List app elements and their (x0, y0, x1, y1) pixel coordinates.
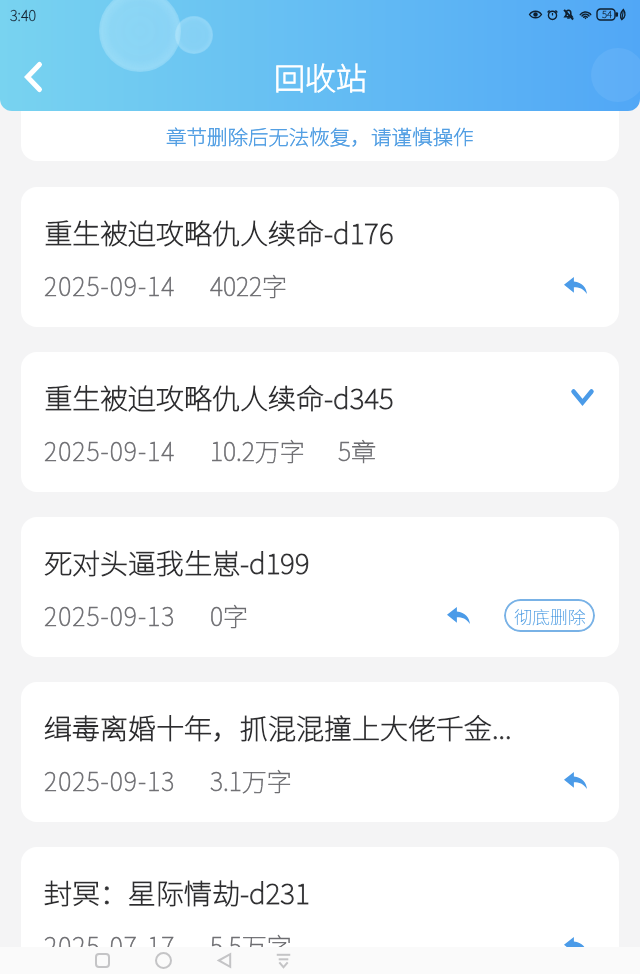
staticText: 2025-09-13 (44, 762, 176, 798)
button[interactable]: Back (217, 953, 232, 968)
staticText: 2025-07-17 (44, 927, 176, 963)
button[interactable]: Restore (555, 925, 595, 965)
staticText: 章节删除后无法恢复，请谨慎操作 (166, 121, 474, 151)
staticText: 2025-07-17 (44, 927, 176, 963)
button[interactable]: Expand (560, 375, 604, 419)
button[interactable]: Recents (96, 954, 109, 967)
button[interactable]: Back (9, 53, 57, 101)
staticText: 54 (602, 7, 612, 21)
staticText: 10.2万字 (210, 432, 305, 468)
staticText: 2025-09-13 (44, 597, 176, 633)
staticText: 2025-09-14 (44, 432, 176, 468)
staticText: 2025-09-14 (44, 267, 176, 303)
staticText: 4022字 (210, 267, 288, 303)
button[interactable]: Restore (555, 265, 595, 305)
staticText: 2025-09-13 (44, 597, 176, 633)
button[interactable]: Hide keyboard (276, 953, 291, 968)
staticText: 5.5万字 (210, 927, 292, 963)
staticText: 彻底删除 (514, 603, 586, 629)
staticText: 5.5万字 (210, 927, 292, 963)
button[interactable]: 死对头逼我生崽-d199 (21, 517, 619, 657)
staticText: 重生被迫攻略仇人续命-d176 (44, 212, 394, 253)
staticText: 0字 (210, 597, 249, 633)
staticText: 章节删除后无法恢复，请谨慎操作 (166, 121, 474, 151)
button[interactable]: Home (155, 952, 172, 969)
button[interactable]: 封冥：星际情劫-d231 (21, 847, 619, 974)
staticText: 3:40 (10, 4, 37, 25)
staticText: 5章 (338, 432, 377, 468)
button[interactable]: 重生被迫攻略仇人续命-d176 (21, 187, 619, 327)
staticText: 54 (602, 7, 612, 21)
staticText: 2025-09-13 (44, 762, 176, 798)
staticText: 2025-09-14 (44, 267, 176, 303)
staticText: 彻底删除 (514, 603, 586, 629)
staticText: 重生被迫攻略仇人续命-d345 (44, 377, 394, 418)
staticText: 3:40 (10, 4, 37, 25)
staticText: 0字 (210, 597, 249, 633)
staticText: 封冥：星际情劫-d231 (44, 872, 310, 913)
button[interactable]: 缉毒离婚十年，抓混混撞上大佬千金... (21, 682, 619, 822)
staticText: 4022字 (210, 267, 288, 303)
staticText: 5章 (338, 432, 377, 468)
staticText: 死对头逼我生崽-d199 (44, 542, 310, 583)
staticText: 封冥：星际情劫-d231 (44, 872, 310, 913)
staticText: 回收站 (274, 54, 367, 99)
staticText: 10.2万字 (210, 432, 305, 468)
staticText: 死对头逼我生崽-d199 (44, 542, 310, 583)
button[interactable]: Restore (555, 760, 595, 800)
staticText: 3.1万字 (210, 762, 292, 798)
staticText: 回收站 (274, 54, 367, 99)
staticText: 缉毒离婚十年，抓混混撞上大佬千金... (44, 707, 512, 748)
staticText: 重生被迫攻略仇人续命-d176 (44, 212, 394, 253)
staticText: 3.1万字 (210, 762, 292, 798)
staticText: 2025-09-14 (44, 432, 176, 468)
staticText: 重生被迫攻略仇人续命-d345 (44, 377, 394, 418)
staticText: 缉毒离婚十年，抓混混撞上大佬千金... (44, 707, 512, 748)
button[interactable]: Restore (438, 595, 478, 635)
button[interactable]: 重生被迫攻略仇人续命-d345 (21, 352, 619, 492)
button[interactable]: 彻底删除 (504, 599, 595, 632)
